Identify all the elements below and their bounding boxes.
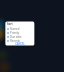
staticText: Recents — [10, 39, 20, 43]
button[interactable]: CANCEL — [5, 41, 34, 45]
staticText: Priority — [10, 31, 20, 35]
button[interactable]: Starred — [5, 27, 34, 31]
staticText: CANCEL — [15, 42, 25, 45]
staticText: Starred — [10, 27, 20, 31]
button[interactable]: Due date — [5, 35, 34, 39]
button[interactable]: Recents — [5, 39, 34, 43]
button[interactable]: Priority — [5, 31, 34, 35]
staticText: Sort — [7, 22, 13, 26]
staticText: Due date — [10, 35, 22, 39]
